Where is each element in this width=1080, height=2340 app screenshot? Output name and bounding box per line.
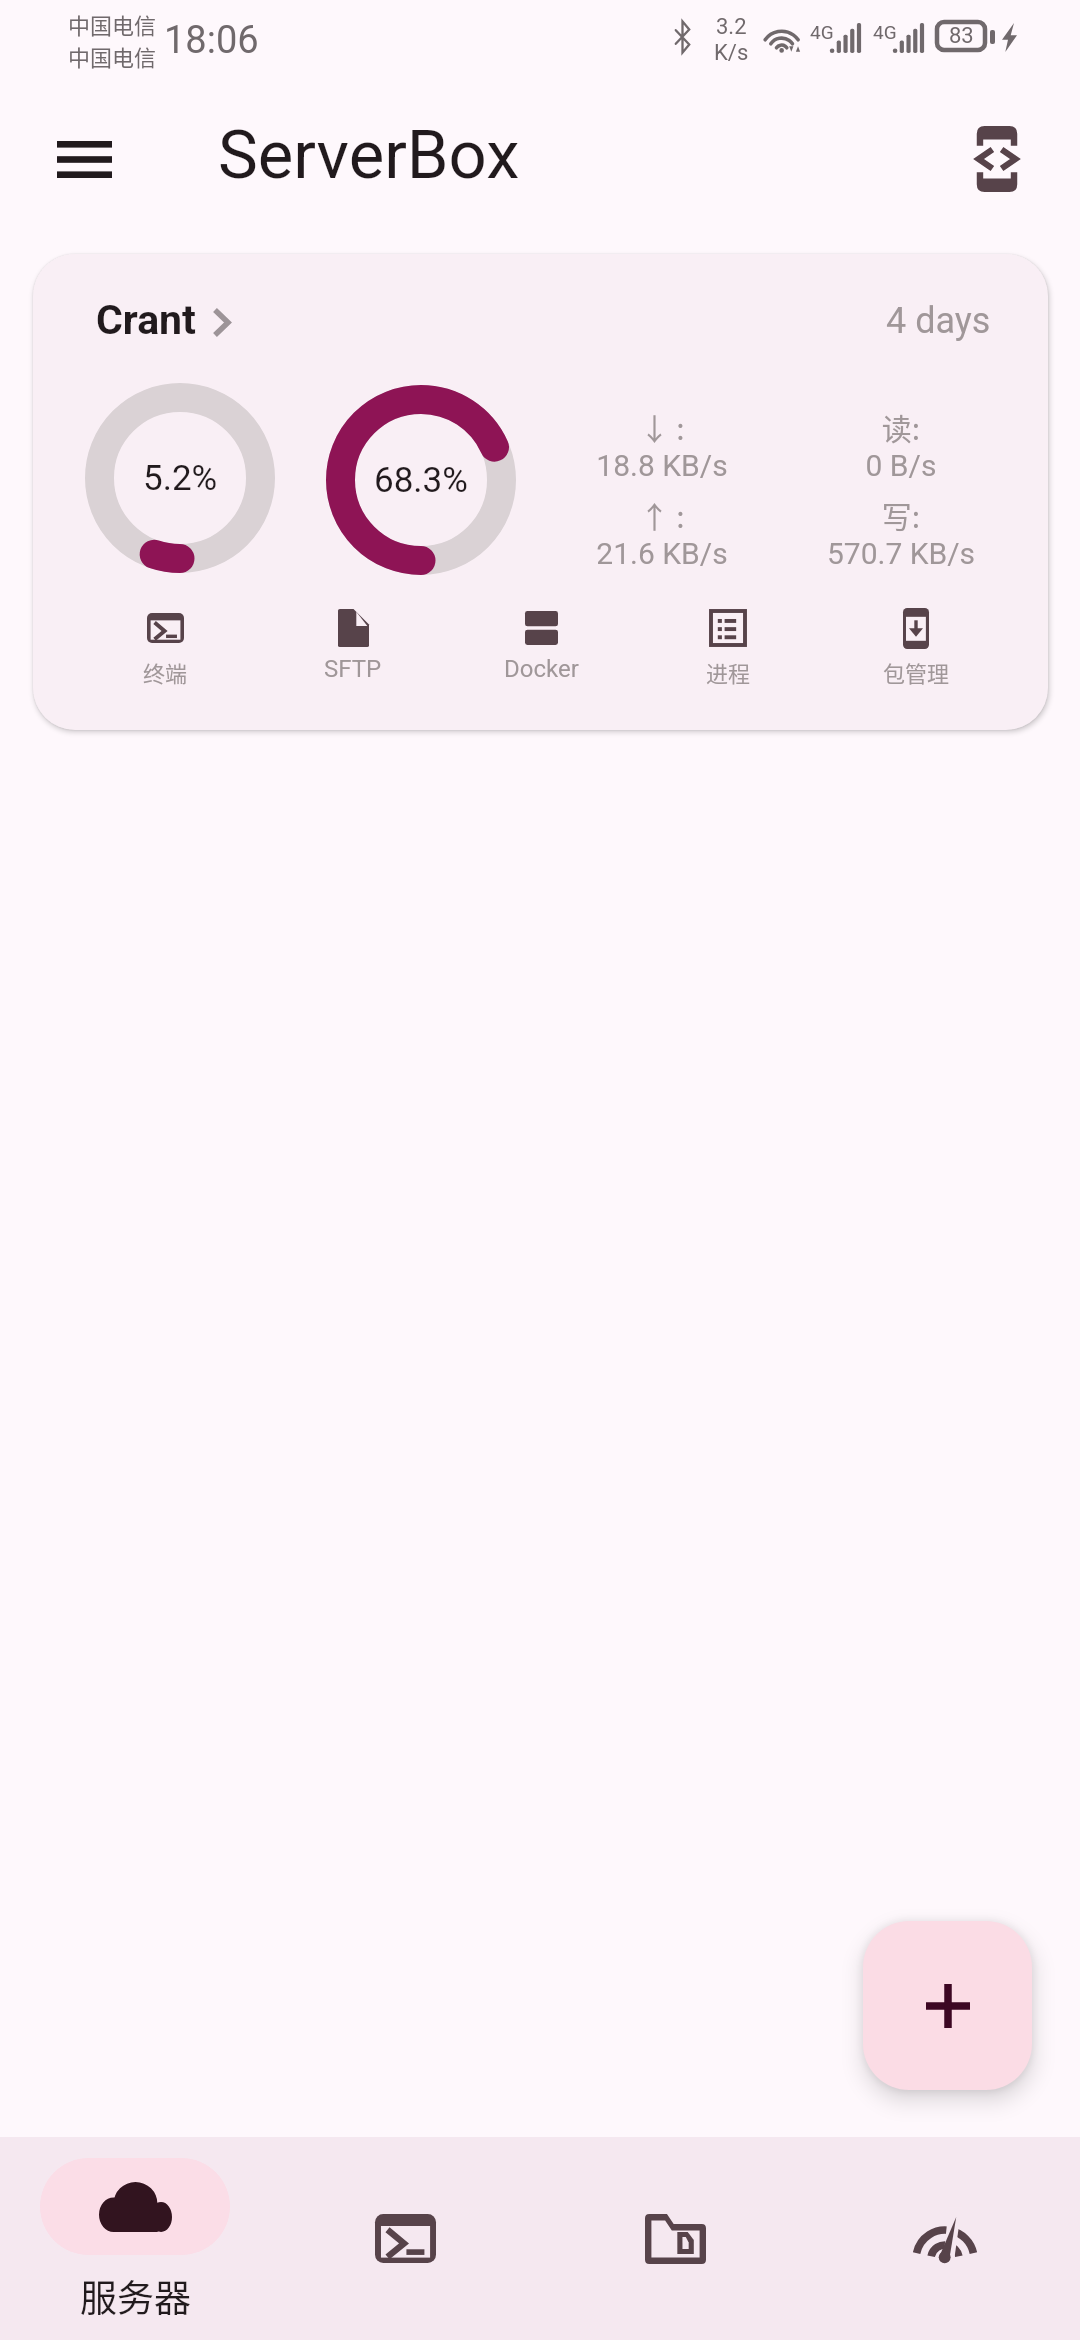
button[interactable]: Crant <box>33 254 1048 730</box>
staticText: 中国电信 <box>68 8 157 40</box>
staticText: 读: <box>786 405 1016 448</box>
button[interactable]: Docker <box>466 607 616 683</box>
staticText: ↓ : <box>547 405 777 448</box>
staticText: ↑ : <box>547 493 777 536</box>
button[interactable]: Terminal <box>270 2137 540 2340</box>
button[interactable]: Files <box>540 2137 810 2340</box>
staticText: Crant <box>96 296 196 344</box>
staticText: 进程 <box>706 656 751 688</box>
button[interactable]: Servers <box>0 2137 270 2340</box>
staticText: 4G <box>873 21 897 43</box>
staticText: 18.8 KB/s <box>547 448 777 483</box>
staticText: SFTP <box>324 655 382 683</box>
staticText: ServerBox <box>218 116 520 195</box>
button[interactable]: 进程 <box>653 607 803 688</box>
staticText: 包管理 <box>883 656 950 688</box>
staticText: 4G <box>810 21 834 43</box>
staticText: 3.2 <box>716 14 747 40</box>
button[interactable]: 包管理 <box>841 607 991 688</box>
staticText: K/s <box>714 40 749 66</box>
staticText: 83 <box>949 23 974 49</box>
staticText: 服务器 <box>80 2269 191 2323</box>
staticText: 68.3% <box>374 460 468 501</box>
staticText: Docker <box>504 655 579 683</box>
staticText: 0 B/s <box>786 448 1016 483</box>
staticText: 570.7 KB/s <box>786 536 1016 571</box>
staticText: 21.6 KB/s <box>547 536 777 571</box>
staticText: 5.2% <box>143 458 218 499</box>
staticText: 18:06 <box>164 18 259 63</box>
staticText: 终端 <box>143 656 188 688</box>
staticText: 4 days <box>886 300 991 342</box>
button[interactable]: SFTP <box>278 607 428 683</box>
staticText: 写: <box>786 493 1016 536</box>
button[interactable]: Developer options <box>942 104 1052 214</box>
button[interactable]: Open navigation menu <box>29 104 139 214</box>
button[interactable]: Add server <box>863 1921 1032 2090</box>
button[interactable]: 终端 <box>90 607 240 688</box>
staticText: 中国电信 <box>68 40 157 72</box>
button[interactable]: Ping <box>810 2137 1080 2340</box>
